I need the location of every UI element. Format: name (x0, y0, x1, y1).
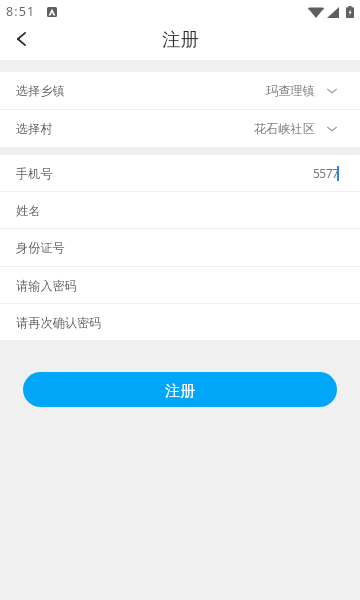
button[interactable]: 请再次确认密码 (0, 304, 360, 340)
staticText: 请输入密码 (16, 278, 77, 293)
staticText: 身份证号 (16, 240, 65, 255)
staticText: 手机号 (16, 166, 53, 181)
button[interactable]: 姓名 (0, 192, 360, 228)
staticText: 花石峡社区 (254, 121, 315, 136)
staticText: 玛查理镇 (266, 83, 315, 98)
staticText: 8:51 (6, 3, 36, 20)
staticText: 注册 (162, 28, 199, 51)
staticText: 请再次确认密码 (16, 315, 102, 330)
button[interactable]: 选择村 (0, 110, 360, 147)
button[interactable]: 手机号 (0, 155, 360, 191)
button[interactable]: 注册 (23, 372, 337, 407)
button[interactable]: 选择乡镇 (0, 72, 360, 109)
staticText: 选择村 (16, 121, 53, 136)
button[interactable]: 请输入密码 (0, 267, 360, 303)
staticText: 注册 (165, 382, 195, 401)
staticText: 姓名 (16, 203, 41, 218)
staticText: 5577 (313, 165, 339, 181)
button[interactable]: Back (0, 21, 42, 57)
button[interactable]: 身份证号 (0, 229, 360, 266)
staticText: 选择乡镇 (16, 83, 65, 98)
